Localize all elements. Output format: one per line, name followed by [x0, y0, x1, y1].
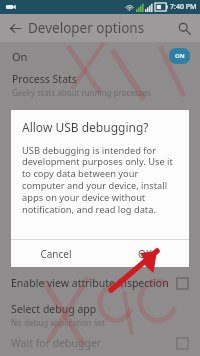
- button[interactable]: On: [0, 42, 200, 70]
- staticText: Wait for debugger: [11, 336, 102, 350]
- staticText: No debug application set: [11, 317, 106, 328]
- button[interactable]: Navigate up: [4, 17, 26, 39]
- button[interactable]: Search: [173, 17, 195, 39]
- staticText: Enable view attribute inspection: [11, 276, 169, 290]
- staticText: Geeky stats about running processes: [12, 87, 151, 98]
- button[interactable]: OK: [100, 240, 189, 267]
- staticText: USB debugging is intended for developmen…: [22, 144, 180, 216]
- staticText: Developer options: [28, 19, 145, 37]
- staticText: Select debug app: [11, 302, 97, 316]
- button[interactable]: Select debug app: [0, 296, 200, 328]
- button[interactable]: Wait for debugger: [0, 336, 200, 354]
- button[interactable]: Cancel: [11, 240, 100, 267]
- button[interactable]: Process Stats: [0, 70, 200, 101]
- staticText: Process Stats: [12, 72, 77, 86]
- staticText: ON: [175, 52, 185, 60]
- staticText: OK: [138, 247, 152, 261]
- button[interactable]: Enable view attribute inspection checkbo…: [177, 278, 188, 289]
- button[interactable]: Developer options on: [169, 48, 190, 64]
- staticText: Cancel: [40, 247, 72, 261]
- staticText: Allow USB debugging?: [22, 119, 149, 135]
- button[interactable]: Enable view attribute inspection: [0, 270, 200, 296]
- staticText: 7:40 PM: [170, 2, 197, 12]
- staticText: On: [12, 49, 28, 64]
